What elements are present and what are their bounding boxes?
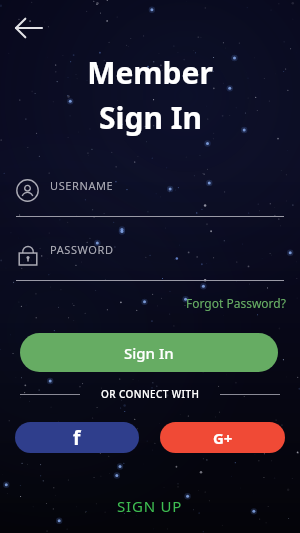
- button[interactable]: SIGN UP: [103, 490, 197, 522]
- button[interactable]: Forgot Password?: [184, 293, 288, 313]
- staticText: OR CONNECT WITH: [101, 387, 200, 401]
- staticText: f: [73, 425, 81, 451]
- other: Password: [18, 243, 38, 266]
- staticText: G+: [213, 428, 233, 448]
- staticText: PASSWORD: [50, 242, 114, 257]
- staticText: Member: [87, 52, 213, 93]
- button[interactable]: Password: [0, 236, 300, 284]
- other: Username: [16, 179, 39, 202]
- button[interactable]: Sign in with Google Plus: [160, 422, 285, 453]
- button[interactable]: Sign In: [20, 333, 278, 372]
- staticText: SIGN UP: [117, 496, 183, 516]
- staticText: Sign In: [124, 343, 174, 363]
- button[interactable]: Sign in with Facebook: [15, 422, 139, 453]
- staticText: Sign In: [99, 97, 202, 138]
- staticText: Forgot Password?: [186, 295, 286, 311]
- button[interactable]: Back: [8, 10, 50, 46]
- staticText: USERNAME: [50, 178, 114, 193]
- button[interactable]: Username: [0, 172, 300, 220]
